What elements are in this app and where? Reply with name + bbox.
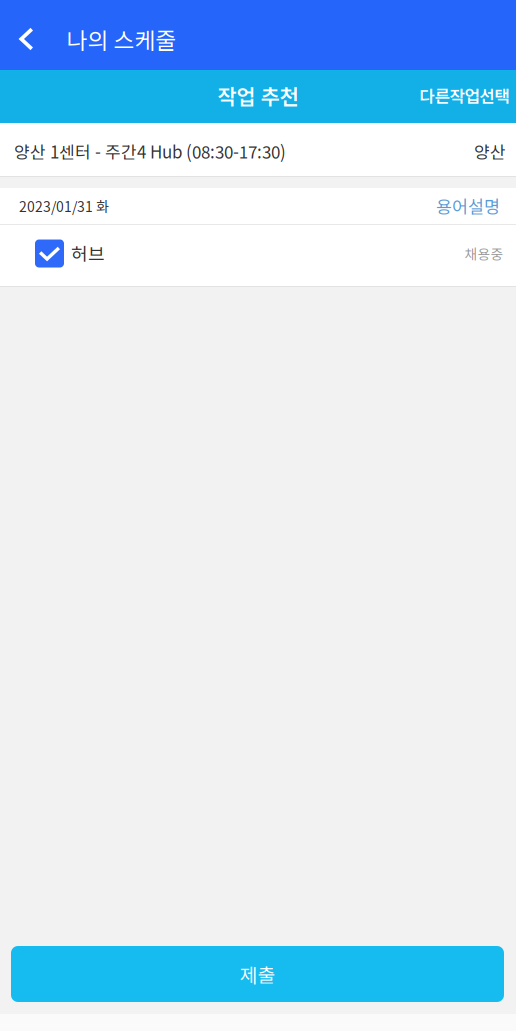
staticText: 다른작업선택 (419, 83, 509, 108)
staticText: 작업 추천 (217, 80, 298, 110)
button[interactable]: 다른작업선택 (419, 70, 516, 123)
staticText: 제출 (239, 960, 275, 988)
staticText: 용어설명 (436, 193, 500, 219)
staticText: 2023/01/31 화 (19, 196, 109, 216)
staticText: 허브 (71, 240, 105, 266)
button[interactable]: 용어설명 (436, 188, 500, 224)
button[interactable]: 제출 (11, 946, 504, 1002)
staticText: 채용중 (464, 244, 503, 263)
staticText: 나의 스케줄 (66, 23, 176, 55)
staticText: 양산 (474, 139, 506, 163)
button[interactable]: 허브 (0, 225, 516, 286)
button[interactable]: Back (0, 0, 49, 70)
staticText: 양산 1센터 - 주간4 Hub (08:30-17:30) (14, 139, 286, 163)
